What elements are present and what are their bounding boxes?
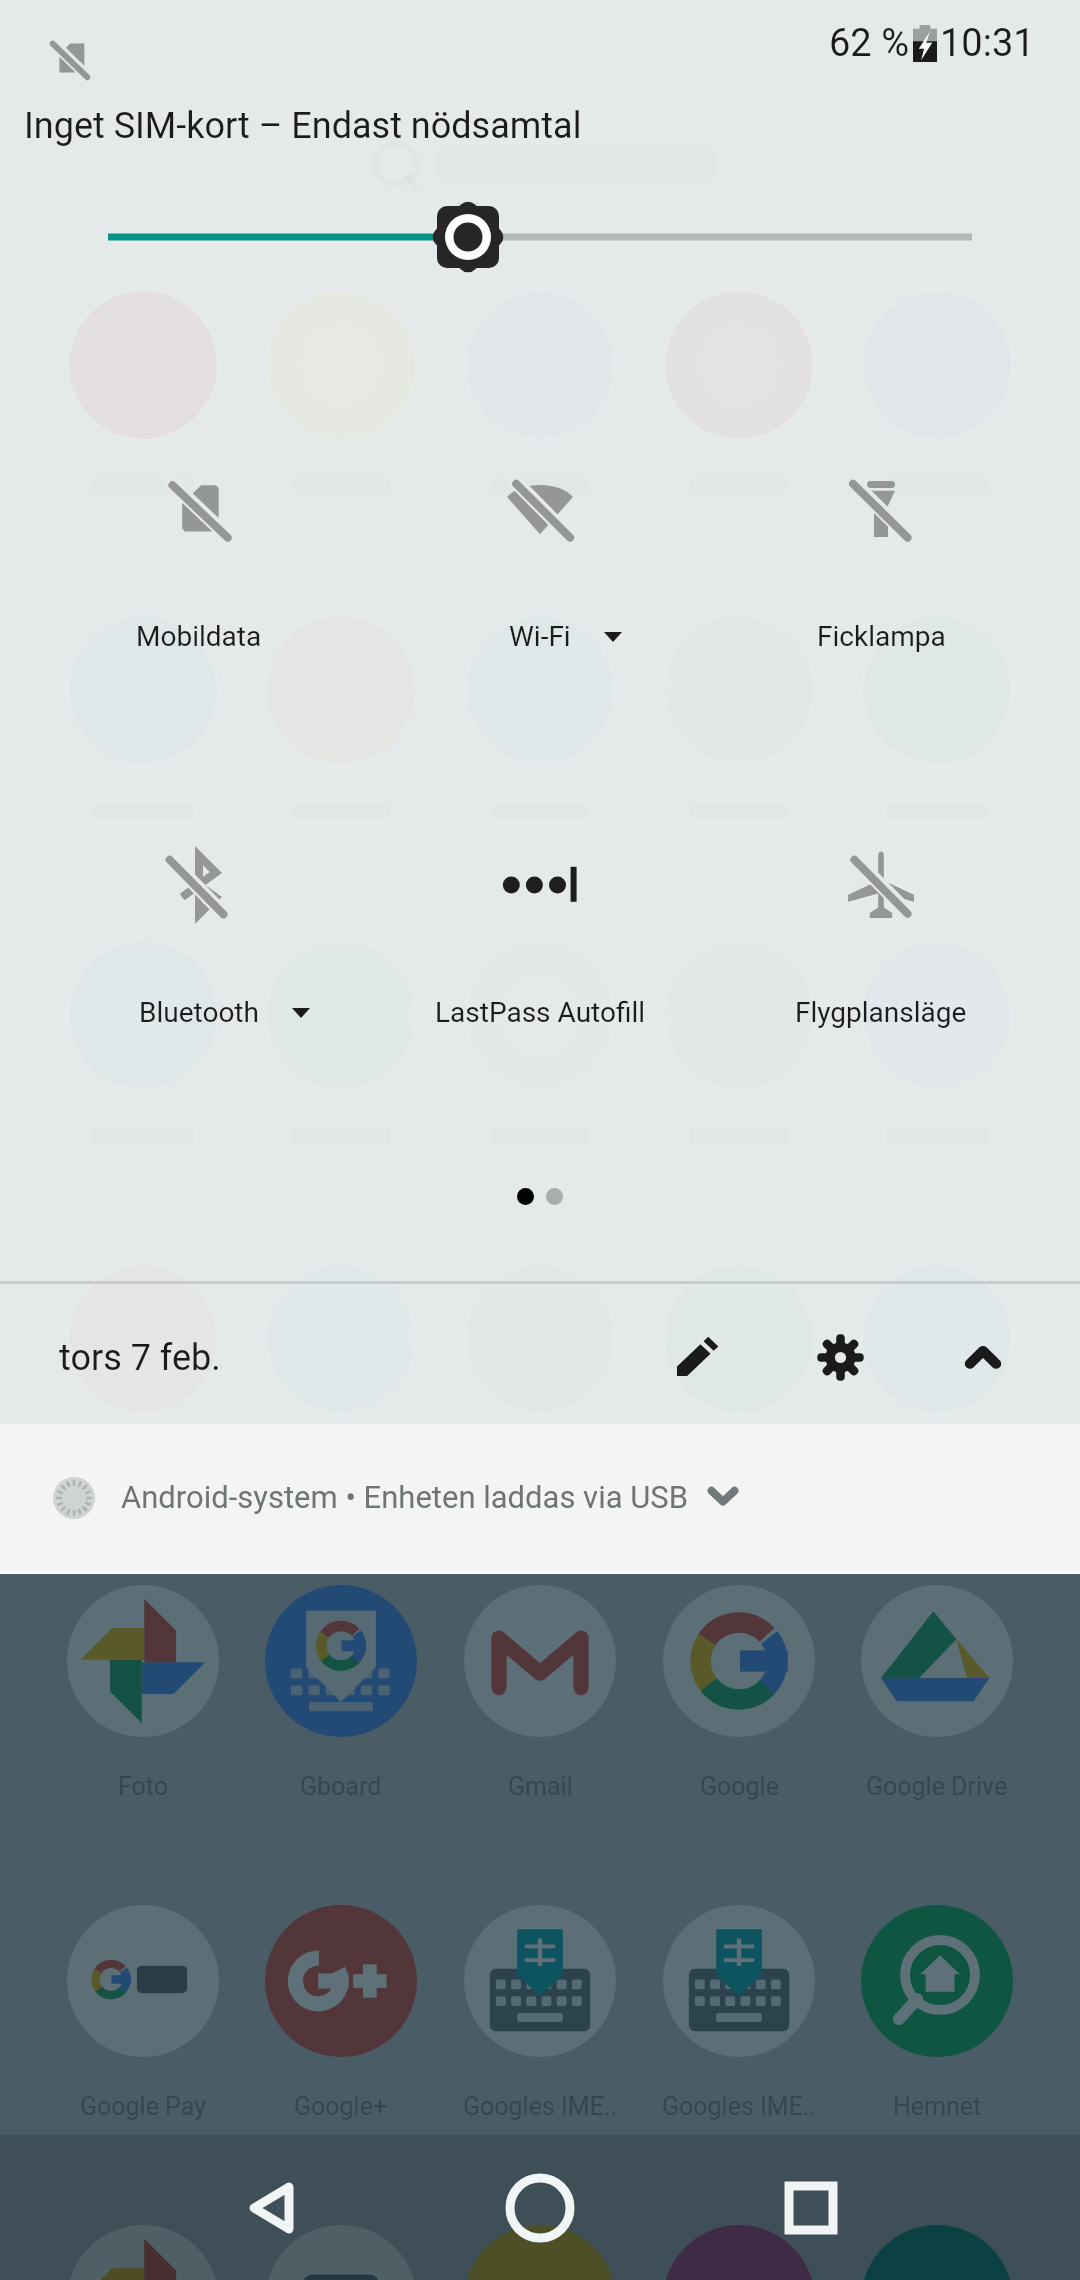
staticText: Hemnet [893,2092,982,2121]
staticText: Bluetooth [139,996,259,1029]
staticText: tors 7 feb. [59,1337,221,1379]
button[interactable]: Foto [44,1571,242,1811]
staticText: Mobildata [136,620,262,653]
staticText: Google [700,1772,779,1801]
button[interactable] [0,1424,1080,1575]
button[interactable]: LastPass Autofill [370,820,710,1020]
button[interactable]: Google Pay [44,1891,242,2131]
button[interactable]: Google [640,1571,838,1811]
button[interactable]: Mobildata [29,444,369,644]
button[interactable]: Gboard [242,1571,440,1811]
button[interactable]: Googles IME.. [441,1891,639,2131]
staticText: Google Pay [80,2092,207,2121]
button[interactable]: Googles IME.. [640,1891,838,2131]
button[interactable]: Settings [784,1301,896,1413]
button[interactable]: Ficklampa [711,444,1051,644]
button[interactable]: Home [467,2135,613,2280]
button[interactable]: Edit tiles [640,1301,752,1413]
button[interactable]: Recent apps [738,2135,884,2280]
staticText: Wi-Fi [509,620,571,653]
staticText: Gboard [300,1772,382,1801]
button[interactable]: Wi-Fi [370,444,710,644]
staticText: Google Drive [866,1772,1008,1801]
staticText: Inget SIM-kort – Endast nödsamtal [24,105,582,147]
staticText: Googles IME.. [662,2092,817,2121]
staticText: Gmail [508,1772,573,1801]
button[interactable]: Bluetooth [29,820,369,1020]
staticText: Ficklampa [817,620,946,653]
staticText: 62 % [829,21,909,66]
button[interactable]: Google+ [242,1891,440,2131]
button[interactable]: Collapse [927,1301,1039,1413]
staticText: Googles IME.. [463,2092,618,2121]
staticText: Foto [118,1772,169,1801]
staticText: Flygplansläge [795,996,967,1029]
button[interactable]: Gmail [441,1571,639,1811]
button[interactable]: Hemnet [838,1891,1036,2131]
button[interactable]: Back [198,2135,344,2280]
staticText: Google+ [294,2092,388,2121]
button[interactable]: Flygplansläge [711,820,1051,1020]
staticText: 10:31 [940,21,1035,66]
staticText: LastPass Autofill [435,996,646,1029]
button[interactable]: Google Drive [838,1571,1036,1811]
staticText: Android-system • Enheten laddas via USB [121,1479,689,1515]
